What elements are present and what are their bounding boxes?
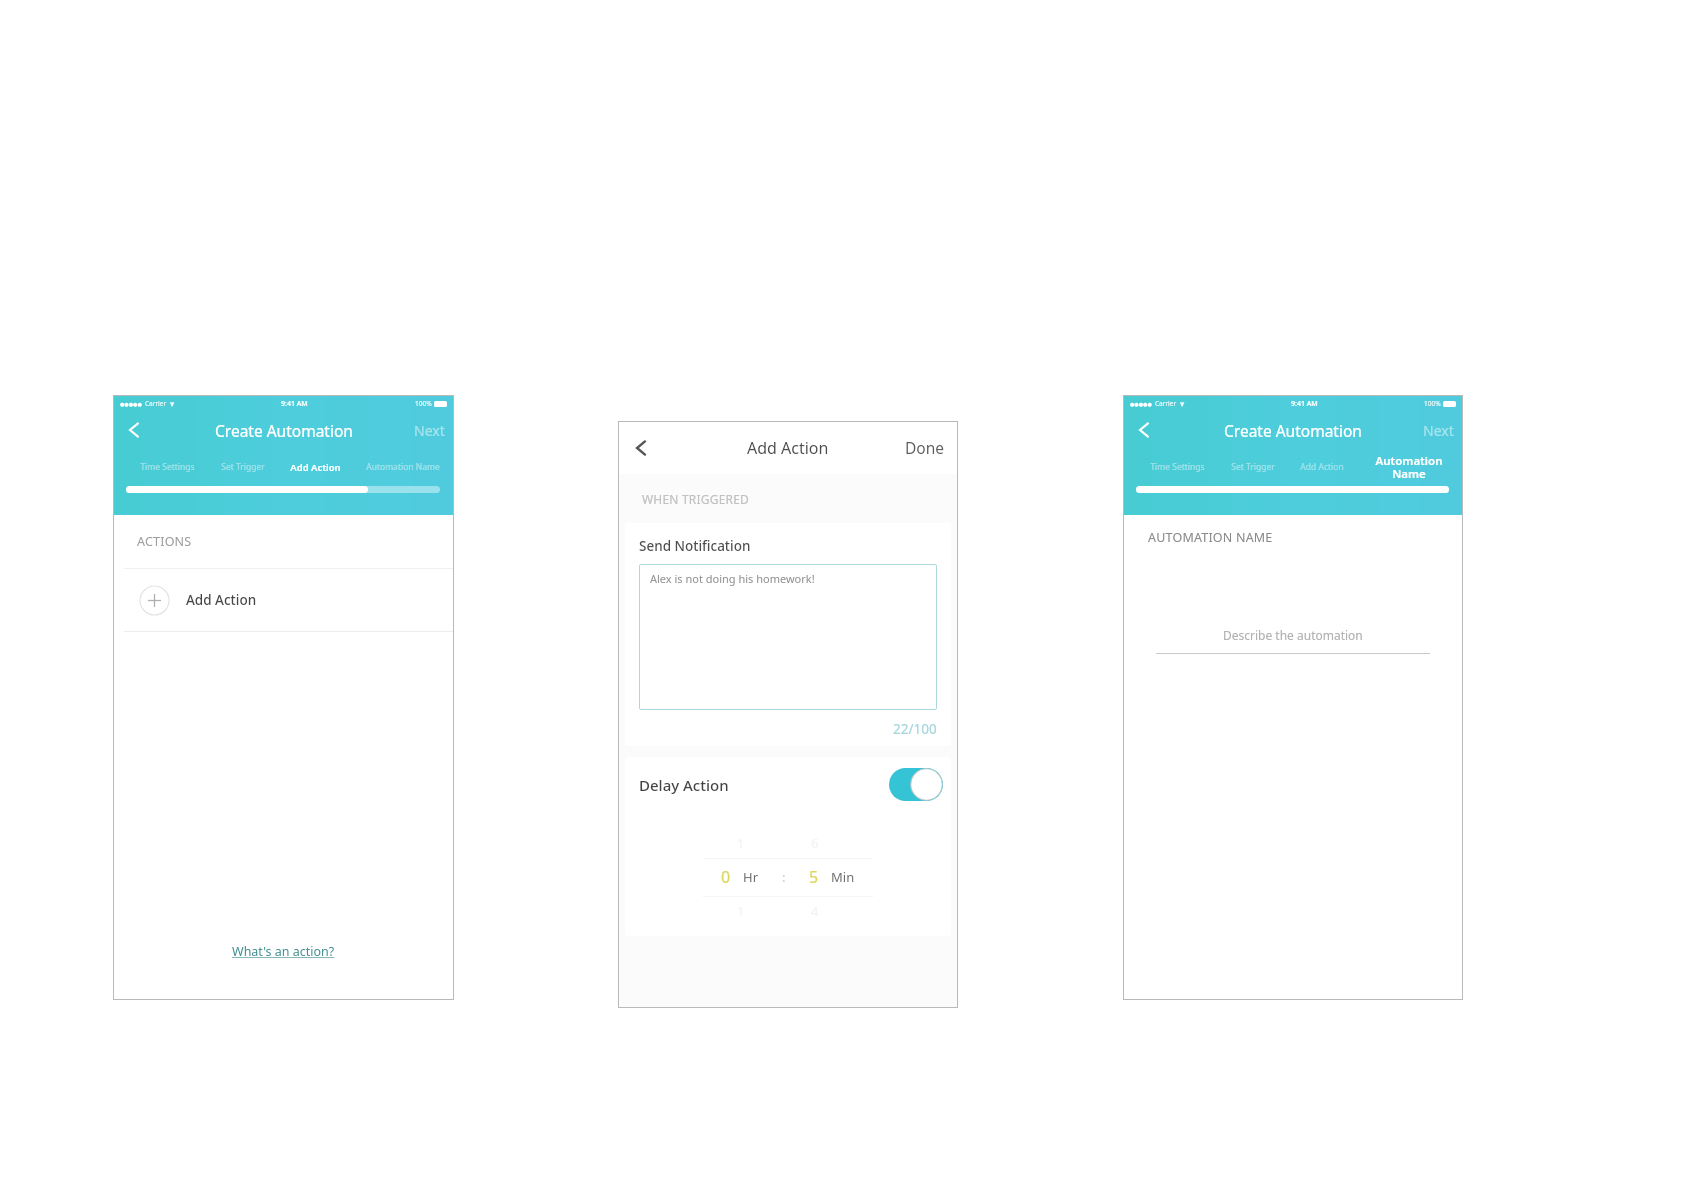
button[interactable]: Add Action [113, 569, 454, 631]
staticText: 100% [415, 399, 432, 408]
staticText: Set Trigger [221, 461, 265, 473]
staticText: 9:41 AM [281, 399, 308, 409]
staticText: Create Automation [1224, 420, 1362, 441]
staticText: Describe the automation [1223, 627, 1363, 643]
staticText: 0 [721, 866, 731, 888]
staticText: Carrier [1155, 399, 1177, 408]
button[interactable]: Back [1131, 417, 1157, 443]
staticText: Add Action [290, 461, 341, 474]
staticText: 6 [811, 834, 819, 852]
staticText: 22/100 [893, 720, 937, 738]
staticText: Add Action [1300, 461, 1344, 473]
staticText: AUTOMATION NAME [1148, 529, 1273, 546]
staticText: Carrier [145, 399, 167, 408]
staticText: Add Action [747, 437, 829, 459]
staticText: Add Action [186, 591, 257, 609]
staticText: 100% [1424, 399, 1441, 408]
staticText: Next [1423, 421, 1454, 440]
button[interactable]: Delay action [889, 768, 943, 801]
staticText: Automation Name [1369, 453, 1449, 482]
button[interactable]: What's an action? [226, 939, 341, 964]
staticText: Time Settings [1150, 461, 1205, 473]
staticText: What's an action? [232, 943, 335, 960]
staticText: Send Notification [639, 537, 751, 555]
staticText: 1 [737, 902, 745, 920]
button[interactable]: Back [121, 417, 147, 443]
staticText: Time Settings [140, 461, 195, 473]
staticText: Create Automation [215, 420, 353, 441]
button[interactable]: Next [405, 415, 454, 446]
staticText: ACTIONS [137, 533, 192, 550]
staticText: ●●●●● [1130, 401, 1152, 407]
staticText: 1 [737, 834, 745, 852]
button[interactable]: Back [628, 435, 654, 461]
staticText: 4 [811, 902, 819, 920]
staticText: Alex is not doing his homework! [650, 571, 815, 586]
staticText: Hr [743, 868, 759, 886]
staticText: Set Trigger [1231, 461, 1275, 473]
staticText: Delay Action [639, 775, 729, 795]
staticText: Automation Name [366, 461, 440, 473]
staticText: Done [905, 437, 945, 458]
staticText: Next [414, 421, 445, 440]
button[interactable]: Next [1414, 415, 1463, 446]
button[interactable]: Done [892, 431, 958, 464]
staticText: Min [831, 868, 855, 886]
staticText: 9:41 AM [1291, 399, 1318, 409]
staticText: ▼ [170, 401, 175, 407]
staticText: 5 [809, 866, 819, 888]
button[interactable]: Describe the automation [1156, 627, 1430, 643]
staticText: ●●●●● [120, 401, 142, 407]
staticText: ▼ [1180, 401, 1185, 407]
staticText: WHEN TRIGGERED [642, 491, 750, 507]
staticText: : [782, 868, 786, 886]
